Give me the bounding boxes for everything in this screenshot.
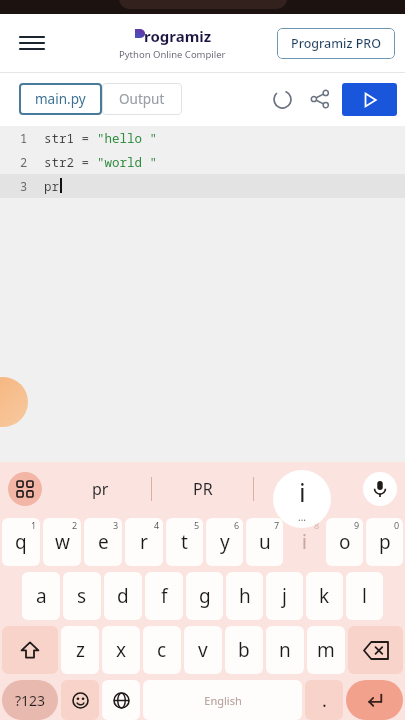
button[interactable]: p [366,518,403,566]
staticText: 3 [113,519,119,531]
staticText: z [76,637,85,663]
staticText: main.py [35,90,86,108]
button[interactable]: t [166,518,203,566]
staticText: rogramiz [144,26,212,46]
staticText: 5 [194,519,200,531]
staticText: pr [92,478,109,500]
staticText: b [238,637,250,663]
staticText: 2 [20,154,28,170]
staticText: m [317,637,335,663]
button[interactable]: i [286,518,323,566]
staticText: h [239,583,251,609]
staticText: d [117,583,129,609]
button[interactable]: Run [342,83,397,116]
button[interactable]: . [305,680,343,720]
button[interactable]: m [307,626,345,674]
button[interactable]: s [63,572,101,620]
button[interactable]: main.py [19,83,102,115]
staticText: ... [298,510,307,524]
button[interactable]: a [22,572,60,620]
staticText: 9 [354,519,360,531]
button[interactable]: Voice input [363,472,397,506]
button[interactable]: d [104,572,142,620]
staticText: o [339,529,351,555]
staticText: g [199,583,211,609]
staticText: k [319,583,330,609]
button[interactable]: ?123 [2,680,58,720]
button[interactable]: Space [143,680,302,720]
button[interactable]: q [2,518,40,566]
button[interactable]: o [326,518,363,566]
button[interactable]: Change language [102,680,140,720]
button[interactable]: j [266,572,303,620]
button[interactable]: Output [102,83,182,115]
button[interactable]: Backspace [348,626,403,674]
button[interactable]: h [226,572,263,620]
staticText: c [157,637,167,663]
staticText: 1 [20,130,28,146]
staticText: r [140,529,148,555]
staticText: English [204,693,242,708]
staticText: 7 [274,519,280,531]
staticText: str2 = [44,154,97,171]
staticText: v [198,637,208,663]
staticText: . [322,688,327,713]
staticText: PR [193,478,213,500]
button[interactable]: Emoji [61,680,99,720]
staticText: 8 [314,519,320,531]
button[interactable]: Keyboard options [8,472,42,506]
staticText: Programiz PRO [291,35,381,52]
button[interactable]: x [102,626,140,674]
button[interactable]: k [306,572,343,620]
staticText: y [220,529,230,555]
staticText: i [299,474,306,509]
staticText: j [282,583,287,609]
button[interactable]: r [125,518,163,566]
staticText: str1 = [44,130,97,147]
staticText: ?123 [15,691,46,710]
staticText: e [98,529,109,555]
button[interactable]: y [206,518,243,566]
staticText: x [116,637,127,663]
staticText: 1 [31,519,37,531]
button[interactable]: f [145,572,183,620]
button[interactable]: v [184,626,222,674]
staticText: "world " [97,154,158,171]
staticText: w [55,529,70,555]
button[interactable]: Programiz PRO [277,28,395,59]
button[interactable]: Shift [2,626,58,674]
button[interactable]: u [246,518,283,566]
button[interactable]: z [61,626,99,674]
staticText: pr [44,178,60,195]
button[interactable]: n [266,626,304,674]
button[interactable]: pr [50,462,151,516]
staticText: s [77,583,87,609]
staticText: a [36,583,47,609]
button[interactable]: c [143,626,181,674]
staticText: f [161,583,168,609]
staticText: 2 [72,519,78,531]
button[interactable]: PR [152,462,253,516]
button[interactable]: Dark mode [264,81,300,117]
staticText: i [302,529,307,555]
button[interactable]: e [84,518,122,566]
staticText: q [15,529,27,555]
button[interactable]: g [186,572,223,620]
staticText: "hello " [97,130,158,147]
button[interactable]: b [225,626,263,674]
button[interactable]: Share [302,81,338,117]
staticText: l [362,583,367,609]
staticText: p [379,529,391,555]
staticText: Output [119,90,165,108]
button[interactable]: w [43,518,81,566]
button[interactable]: Menu [12,23,52,63]
staticText: n [279,637,291,663]
staticText: 6 [234,519,240,531]
staticText: u [259,529,271,555]
button[interactable]: Enter [346,680,403,720]
staticText: 4 [154,519,160,531]
staticText: 0 [394,519,400,531]
staticText: 3 [20,178,28,194]
staticText: Python Online Compiler [119,48,226,61]
button[interactable]: l [346,572,383,620]
